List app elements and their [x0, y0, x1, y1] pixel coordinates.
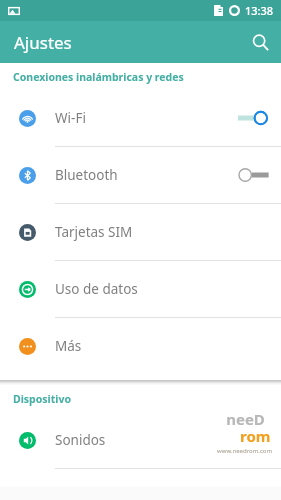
staticText: Sonidos	[55, 431, 106, 449]
staticText: 13:38	[245, 3, 274, 18]
button[interactable]: Sonidos	[0, 412, 281, 468]
button[interactable]: Bluetooth	[0, 147, 281, 203]
button[interactable]: Tarjetas SIM	[0, 204, 281, 260]
staticText: Wi-Fi	[55, 109, 86, 127]
button[interactable]: Más	[0, 318, 281, 374]
staticText: Uso de datos	[55, 280, 138, 298]
staticText: Tarjetas SIM	[55, 223, 133, 241]
button[interactable]	[236, 110, 270, 126]
staticText: Bluetooth	[55, 166, 118, 184]
staticText: Ajustes	[14, 31, 72, 54]
button[interactable]	[236, 167, 270, 183]
staticText: Más	[55, 337, 82, 355]
staticText: Conexiones inalámbricas y redes	[13, 70, 184, 84]
button[interactable]: Buscar	[239, 21, 281, 63]
staticText: www.needrom.com	[217, 447, 273, 455]
staticText: neeD	[226, 409, 265, 429]
button[interactable]: Wi-Fi	[0, 90, 281, 146]
staticText: rom	[240, 426, 271, 446]
button[interactable]: Uso de datos	[0, 261, 281, 317]
staticText: Dispositivo	[13, 392, 71, 406]
